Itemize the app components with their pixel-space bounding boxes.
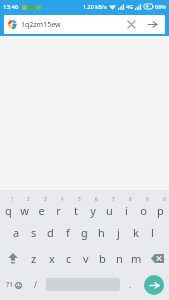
staticText: 1.20 kB/s [83, 3, 107, 10]
staticText: d [47, 225, 54, 240]
staticText: t [74, 203, 78, 218]
button[interactable]: b [94, 245, 111, 271]
button[interactable]: a [8, 220, 25, 245]
button[interactable]: Symbols and emoji [0, 271, 27, 298]
button[interactable]: 1q2zm15ew [4, 15, 165, 34]
staticText: g [81, 225, 88, 240]
staticText: b [99, 251, 106, 266]
staticText: l [151, 225, 154, 240]
button[interactable]: Search [141, 15, 163, 34]
staticText: 2 [27, 196, 30, 202]
staticText: w [20, 203, 29, 218]
button[interactable]: Send [139, 271, 169, 298]
staticText: z [31, 251, 37, 266]
staticText: 4 [61, 196, 64, 202]
staticText: a [13, 225, 20, 240]
button[interactable]: Shift [0, 245, 25, 271]
button[interactable]: k [127, 220, 144, 245]
button[interactable]: 6 [84, 194, 101, 220]
button[interactable]: Clear [122, 15, 141, 34]
button[interactable]: 1 [0, 194, 16, 220]
button[interactable]: v [77, 245, 94, 271]
staticText: 4G [126, 3, 134, 10]
staticText: ?1 [6, 280, 14, 290]
staticText: o [140, 203, 147, 218]
staticText: 7 [112, 196, 115, 202]
staticText: . [129, 279, 132, 290]
button[interactable]: Backspace [145, 245, 169, 271]
staticText: m [131, 251, 142, 266]
staticText: v [83, 251, 89, 266]
staticText: 8 [129, 196, 132, 202]
staticText: 6 [95, 196, 98, 202]
staticText: 13:46 [3, 3, 19, 11]
staticText: i [125, 203, 128, 218]
button[interactable]: h [93, 220, 110, 245]
staticText: n [116, 251, 123, 266]
staticText: f [66, 225, 70, 240]
staticText: 9 [146, 196, 149, 202]
staticText: q [5, 203, 12, 218]
button[interactable]: 7 [101, 194, 118, 220]
staticText: / [34, 279, 37, 290]
button[interactable]: 2 [16, 194, 33, 220]
button[interactable]: 0 [152, 194, 169, 220]
button[interactable]: g [76, 220, 93, 245]
staticText: 1q2zm15ew [21, 20, 122, 30]
button[interactable]: d [42, 220, 59, 245]
button[interactable]: x [43, 245, 60, 271]
staticText: c [66, 251, 72, 266]
button[interactable]: c [60, 245, 77, 271]
button[interactable]: 5 [67, 194, 84, 220]
button[interactable]: / [27, 271, 44, 298]
staticText: u [106, 203, 113, 218]
staticText: 0 [163, 196, 166, 202]
button[interactable]: s [25, 220, 42, 245]
staticText: x [49, 251, 55, 266]
staticText: k [133, 225, 139, 240]
staticText: h [98, 225, 105, 240]
button[interactable]: 4 [50, 194, 67, 220]
button[interactable]: 9 [135, 194, 152, 220]
staticText: y [90, 203, 96, 218]
button[interactable]: m [128, 245, 145, 271]
button[interactable]: n [111, 245, 128, 271]
staticText: s [31, 225, 37, 240]
staticText: 1 [11, 196, 14, 202]
staticText: p [157, 203, 164, 218]
button[interactable]: f [59, 220, 76, 245]
staticText: r [56, 203, 61, 218]
staticText: 66% [155, 3, 166, 10]
staticText: 5 [78, 196, 81, 202]
button[interactable]: j [110, 220, 127, 245]
staticText: e [38, 203, 45, 218]
button[interactable]: 8 [118, 194, 135, 220]
staticText: 3 [44, 196, 47, 202]
button[interactable]: . [122, 271, 139, 298]
staticText: j [117, 225, 120, 240]
button[interactable]: l [144, 220, 161, 245]
button[interactable]: 3 [33, 194, 50, 220]
button[interactable]: z [25, 245, 43, 271]
